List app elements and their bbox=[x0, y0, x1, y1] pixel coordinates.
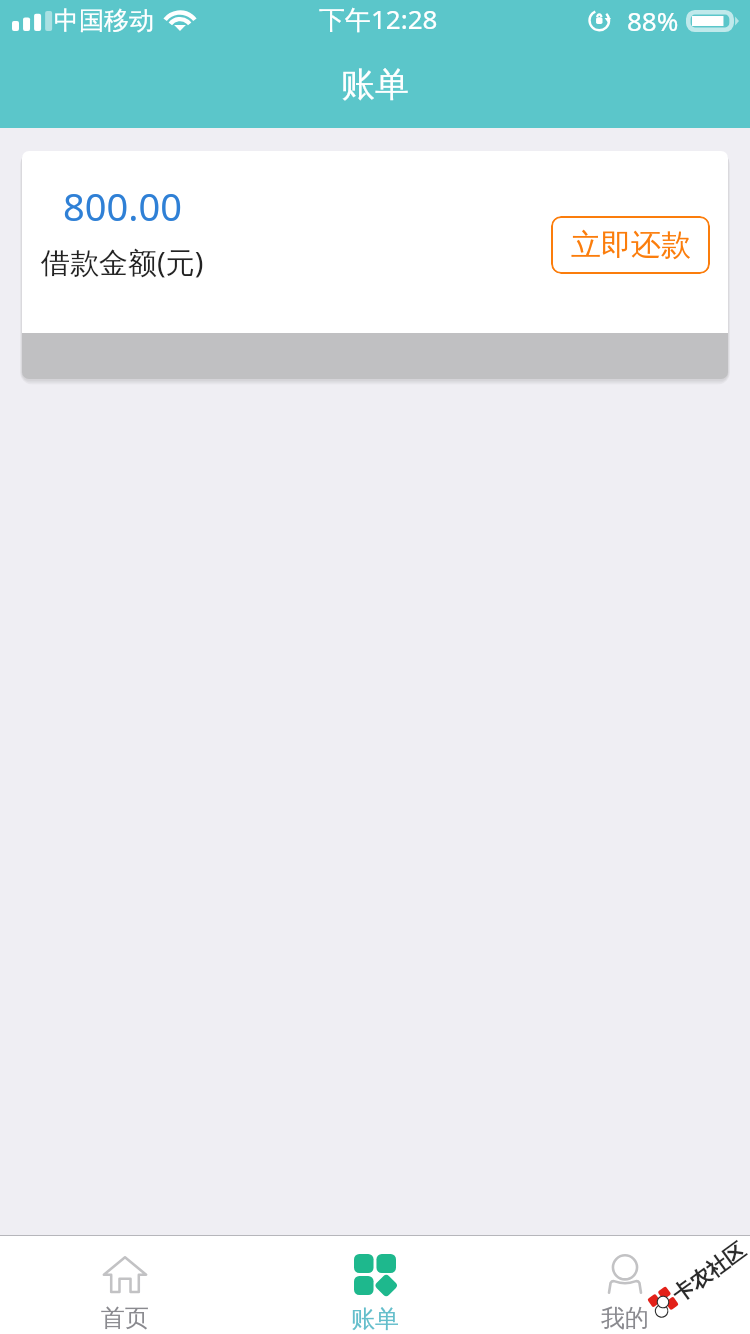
other: Battery 88 percent bbox=[686, 10, 739, 32]
staticText: 下午12:28 bbox=[319, 1, 438, 37]
staticText: 账单 bbox=[351, 1304, 399, 1334]
staticText: 立即还款 bbox=[571, 226, 691, 264]
button[interactable]: 首页 bbox=[0, 1236, 250, 1334]
staticText: 卡农社区 bbox=[667, 1237, 750, 1307]
button[interactable]: 账单 bbox=[250, 1236, 500, 1334]
other: Cellular signal strength bbox=[12, 11, 45, 31]
staticText: 账单 bbox=[341, 63, 409, 106]
staticText: 首页 bbox=[101, 1303, 149, 1333]
other: Rotation lock bbox=[588, 10, 614, 31]
button[interactable]: 800.00 bbox=[22, 151, 728, 333]
staticText: 借款金额(元) bbox=[41, 242, 204, 282]
staticText: 我的 bbox=[601, 1303, 649, 1333]
button[interactable]: 我的 bbox=[500, 1236, 750, 1334]
staticText: 88% bbox=[627, 3, 679, 38]
staticText: 800.00 bbox=[63, 180, 182, 232]
staticText: 中国移动 bbox=[54, 5, 154, 36]
other: Wi-Fi connected bbox=[165, 10, 195, 31]
button[interactable]: 立即还款 bbox=[551, 216, 710, 274]
